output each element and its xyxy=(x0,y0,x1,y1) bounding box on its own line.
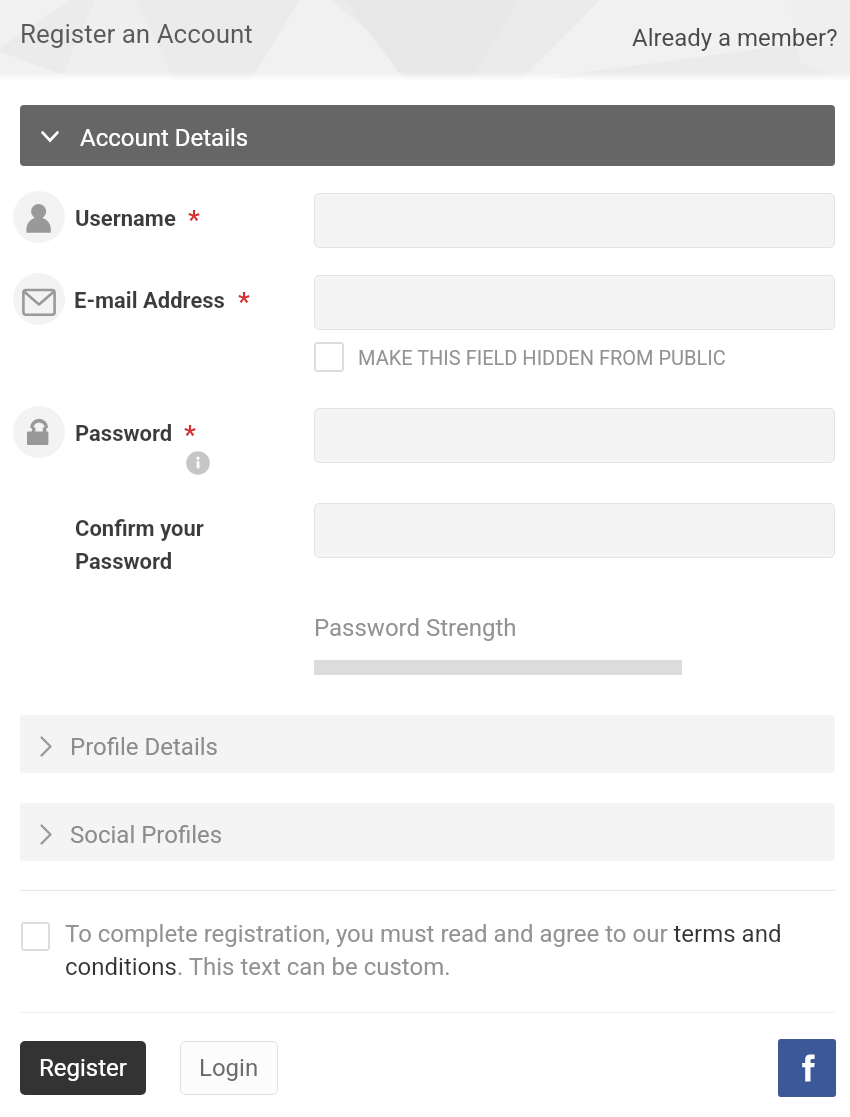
button[interactable]: Account Details xyxy=(20,105,835,166)
staticText: E-mail Address xyxy=(74,288,225,314)
button[interactable] xyxy=(314,503,835,558)
button[interactable] xyxy=(314,275,835,330)
button[interactable]: MAKE THIS FIELD HIDDEN FROM PUBLIC xyxy=(314,342,726,372)
staticText: * xyxy=(238,287,250,317)
staticText: Register an Account xyxy=(20,19,253,49)
staticText: Password Strength xyxy=(314,614,517,642)
staticText: Login xyxy=(199,1054,259,1082)
staticText: Password xyxy=(75,421,173,447)
staticText: To complete registration, you must read … xyxy=(65,920,793,981)
staticText: Register xyxy=(39,1054,127,1082)
staticText: MAKE THIS FIELD HIDDEN FROM PUBLIC xyxy=(358,346,726,369)
staticText: * xyxy=(184,420,196,450)
button[interactable]: Already a member? xyxy=(632,24,838,52)
staticText: Username xyxy=(75,206,176,232)
button[interactable]: Login xyxy=(180,1041,278,1095)
staticText: Confirm your Password xyxy=(75,516,204,574)
button[interactable]: Register xyxy=(20,1041,146,1095)
button[interactable] xyxy=(314,193,835,248)
button[interactable]: Profile Details xyxy=(20,715,835,773)
staticText: Account Details xyxy=(80,124,249,152)
staticText: Profile Details xyxy=(70,733,218,761)
button[interactable]: To complete registration, you must read … xyxy=(20,918,810,990)
button[interactable]: Facebook xyxy=(778,1039,836,1097)
staticText: * xyxy=(188,205,200,235)
button[interactable]: Password information xyxy=(186,451,210,475)
button[interactable] xyxy=(314,408,835,463)
staticText: Social Profiles xyxy=(70,821,223,849)
button[interactable]: Social Profiles xyxy=(20,803,835,861)
